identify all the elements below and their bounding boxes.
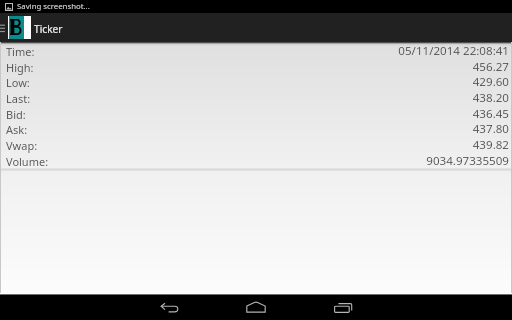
staticText: 438.20 [31,90,509,106]
staticText: Last: [6,91,31,106]
staticText: Vwap: [6,138,38,153]
button[interactable]: Home [198,295,284,320]
button[interactable]: Bid: [0,106,512,122]
staticText: 436.45 [26,106,509,122]
button[interactable]: Vwap: [0,137,512,153]
button[interactable]: Volume: [0,153,512,169]
staticText: Low: [6,75,30,90]
button[interactable]: Open navigation drawer [0,13,8,42]
staticText: 05/11/2014 22:08:41 [35,43,509,59]
button[interactable]: Time: [0,43,512,59]
staticText: 437.80 [28,121,509,137]
staticText: High: [6,60,34,75]
button[interactable]: Low: [0,74,512,90]
button[interactable]: Ask: [0,121,512,137]
staticText: 429.60 [30,74,509,90]
staticText: Saving screenshot... [17,1,90,12]
button[interactable]: Recent apps [284,295,370,320]
button[interactable]: Last: [0,90,512,106]
staticText: Volume: [6,154,49,169]
staticText: Time: [6,44,35,59]
staticText: Bid: [6,107,26,122]
staticText: 456.27 [34,59,509,75]
staticText: Ticker [34,22,63,36]
staticText: 9034.97335509 [49,153,509,169]
button[interactable]: High: [0,59,512,75]
staticText: Ask: [6,122,28,137]
button[interactable]: Back [142,295,198,320]
staticText: 439.82 [38,137,509,153]
